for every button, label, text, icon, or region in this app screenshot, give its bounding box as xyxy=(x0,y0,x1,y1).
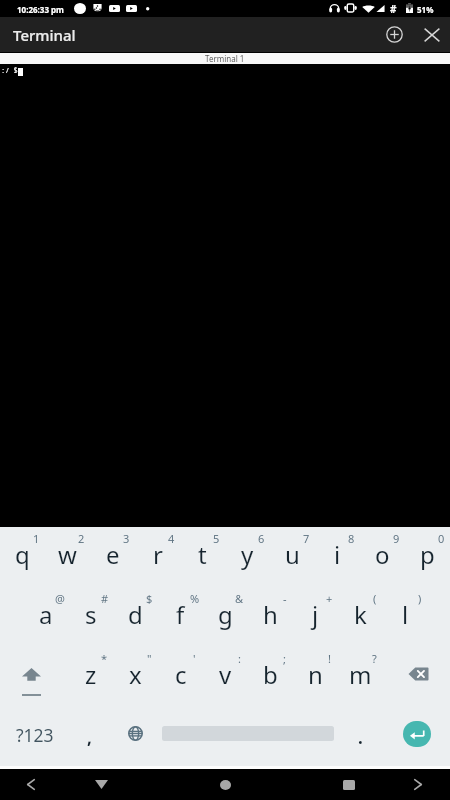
button[interactable]: 0 xyxy=(405,527,450,587)
button[interactable]: 6 xyxy=(225,527,270,587)
button[interactable]: , xyxy=(76,707,118,768)
staticText: 3 xyxy=(123,531,130,546)
staticText: ) xyxy=(418,591,422,606)
staticText: # xyxy=(390,2,397,16)
staticText: 4 xyxy=(168,531,175,546)
button[interactable]: % xyxy=(158,587,203,647)
button[interactable]: 1 xyxy=(0,527,45,587)
staticText: z xyxy=(85,658,97,691)
button[interactable]: 3 xyxy=(90,527,135,587)
staticText: ?123 xyxy=(16,723,54,747)
staticText: j xyxy=(312,598,319,631)
staticText: ; xyxy=(283,651,286,666)
staticText: :/ $ xyxy=(1,66,18,76)
staticText: 51% xyxy=(417,4,434,15)
staticText: q xyxy=(15,538,30,571)
button[interactable]: @ xyxy=(23,587,68,647)
button[interactable]: - xyxy=(248,587,293,647)
button[interactable]: Close xyxy=(414,17,449,52)
button[interactable]: ? xyxy=(338,647,383,707)
staticText: ! xyxy=(328,651,331,666)
staticText: + xyxy=(326,591,333,606)
staticText: % xyxy=(190,591,200,606)
staticText: 5 xyxy=(213,531,220,546)
button[interactable]: 5 xyxy=(180,527,225,587)
button[interactable]: ( xyxy=(338,587,383,647)
staticText: w xyxy=(58,538,77,571)
staticText: 10:26:33 pm xyxy=(17,4,64,15)
button[interactable]: + xyxy=(293,587,338,647)
staticText: ' xyxy=(193,651,196,666)
button[interactable]: ; xyxy=(248,647,293,707)
staticText: a xyxy=(39,598,53,631)
button[interactable]: ' xyxy=(158,647,203,707)
button[interactable]: 4 xyxy=(135,527,180,587)
staticText: r xyxy=(153,538,163,571)
staticText: i xyxy=(334,538,341,571)
staticText: m xyxy=(349,658,372,691)
button[interactable]: Recent apps xyxy=(327,769,371,800)
staticText: ( xyxy=(373,591,377,606)
staticText: s xyxy=(85,598,97,631)
staticText: " xyxy=(147,651,152,666)
staticText: h xyxy=(263,598,278,631)
staticText: Terminal 1 xyxy=(205,53,245,64)
staticText: p xyxy=(420,538,435,571)
button[interactable]: ) xyxy=(383,587,428,647)
staticText: u xyxy=(285,538,300,571)
button[interactable]: . xyxy=(334,707,378,768)
button[interactable]: 2 xyxy=(45,527,90,587)
button[interactable]: $ xyxy=(113,587,158,647)
staticText: * xyxy=(101,651,108,666)
button[interactable]: 9 xyxy=(360,527,405,587)
button[interactable]: 8 xyxy=(315,527,360,587)
button[interactable]: 7 xyxy=(270,527,315,587)
staticText: b xyxy=(263,658,278,691)
button[interactable]: Change keyboard language xyxy=(118,707,162,768)
staticText: v xyxy=(219,658,232,691)
staticText: x xyxy=(129,658,142,691)
staticText: . xyxy=(358,726,363,749)
staticText: ? xyxy=(372,651,377,666)
button[interactable]: * xyxy=(68,647,113,707)
button[interactable]: # xyxy=(68,587,113,647)
staticText: 9 xyxy=(393,531,400,546)
staticText: : xyxy=(238,651,241,666)
staticText: l xyxy=(402,598,409,631)
staticText: k xyxy=(354,598,367,631)
staticText: g xyxy=(218,598,233,631)
staticText: & xyxy=(235,591,244,606)
button[interactable]: New session xyxy=(377,17,412,52)
staticText: 6 xyxy=(258,531,265,546)
staticText: 1 xyxy=(33,531,40,546)
staticText: 2 xyxy=(78,531,85,546)
staticText: - xyxy=(283,591,287,606)
button[interactable]: Shift xyxy=(0,647,67,707)
button[interactable]: " xyxy=(113,647,158,707)
button[interactable]: Forward xyxy=(396,769,440,800)
staticText: d xyxy=(128,598,143,631)
staticText: @ xyxy=(55,591,65,606)
staticText: Terminal xyxy=(13,25,76,45)
staticText: e xyxy=(106,538,120,571)
button[interactable]: Terminal 1 xyxy=(0,53,450,64)
staticText: , xyxy=(87,726,92,749)
staticText: t xyxy=(198,538,207,571)
button[interactable]: Backspace xyxy=(382,647,450,707)
button[interactable]: Back xyxy=(9,769,53,800)
staticText: 7 xyxy=(303,531,310,546)
button[interactable]: & xyxy=(203,587,248,647)
button[interactable]: ! xyxy=(293,647,338,707)
button[interactable]: Hide keyboard xyxy=(79,769,123,800)
button[interactable]: Home xyxy=(203,769,247,800)
staticText: # xyxy=(101,591,109,606)
staticText: f xyxy=(176,598,185,631)
staticText: 8 xyxy=(348,531,355,546)
staticText: y xyxy=(241,538,254,571)
button[interactable]: ?123 xyxy=(0,707,76,768)
button[interactable]: : xyxy=(203,647,248,707)
staticText: $ xyxy=(146,591,153,606)
staticText: o xyxy=(375,538,390,571)
button[interactable]: Enter xyxy=(378,707,450,768)
